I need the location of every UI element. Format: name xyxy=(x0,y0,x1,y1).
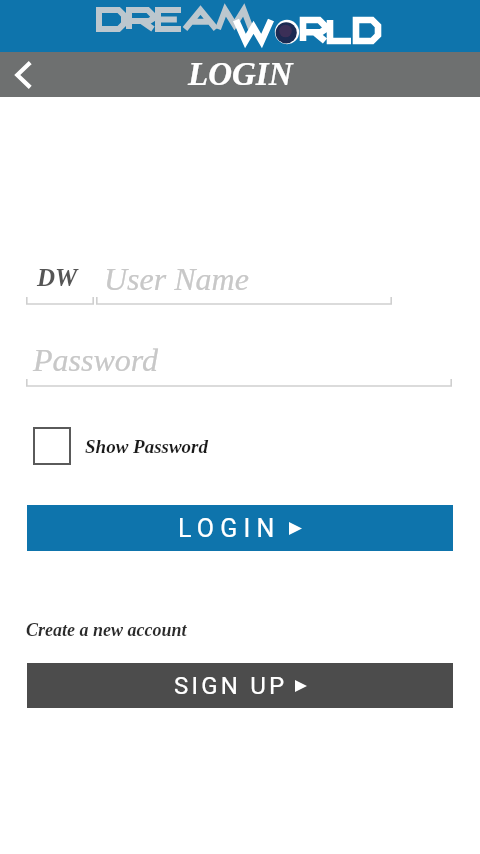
button[interactable]: LOGIN xyxy=(27,505,453,551)
staticText: LOGIN xyxy=(178,514,281,543)
staticText: DW xyxy=(37,264,78,292)
button[interactable]: SIGN UP xyxy=(27,663,453,708)
staticText: LOGIN xyxy=(188,56,293,93)
staticText: Password xyxy=(33,342,159,377)
staticText: SIGN UP xyxy=(174,672,288,700)
staticText: User Name xyxy=(104,261,249,296)
staticText: Create a new account xyxy=(26,620,187,640)
button[interactable]: Show Password xyxy=(27,421,209,471)
button[interactable]: Back xyxy=(0,52,45,97)
staticText: Show Password xyxy=(85,436,209,457)
